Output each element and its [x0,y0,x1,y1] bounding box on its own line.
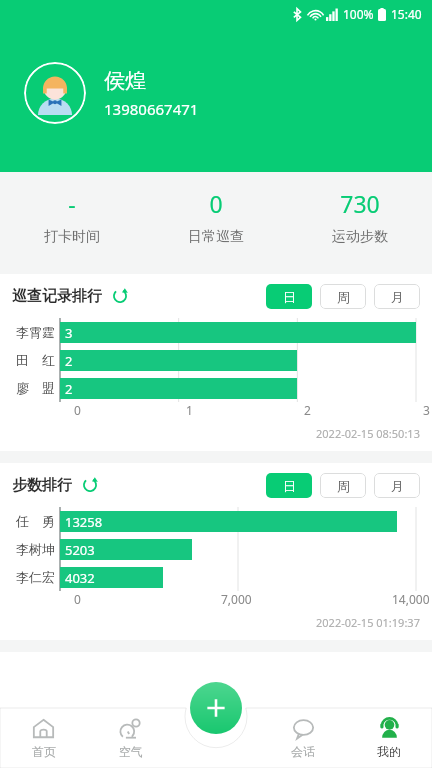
staticText: 0 [209,188,223,219]
button[interactable]: 日 [266,284,312,309]
staticText: 2 [304,402,311,418]
button[interactable]: 首页 [0,708,87,768]
staticText: 空气 [119,744,143,759]
button[interactable]: 我的 [346,708,432,768]
staticText: 3 [423,402,430,418]
staticText: 周 [337,478,350,494]
staticText: 李仁宏 [16,569,55,585]
staticText: 巡查记录排行 [12,287,102,306]
button[interactable]: Add [190,682,242,734]
staticText: 月 [391,478,404,494]
staticText: 步数排行 [12,476,72,495]
staticText: 运动步数 [332,228,388,246]
staticText: 李树坤 [16,541,55,557]
staticText: 日常巡查 [188,228,244,246]
button[interactable]: 月 [374,473,420,498]
staticText: 2 [65,380,73,398]
staticText: 100% [343,6,374,22]
staticText: 4032 [65,569,95,587]
staticText: 3 [65,324,73,342]
staticText: 侯煌 [104,68,146,94]
staticText: 周 [337,289,350,305]
button[interactable]: 730 [288,172,432,262]
staticText: 15:40 [391,6,422,22]
staticText: 730 [340,188,380,219]
button[interactable]: 空气 [87,708,174,768]
button[interactable]: 周 [320,473,366,498]
staticText: 日 [283,478,296,494]
button[interactable]: Refresh [80,475,100,495]
staticText: 日 [283,289,296,305]
button[interactable]: 0 [144,172,288,262]
button[interactable]: - [0,172,144,262]
staticText: 会话 [291,744,315,759]
button[interactable]: 会话 [260,708,346,768]
staticText: 打卡时间 [44,228,100,246]
staticText: 2 [65,352,73,370]
staticText: - [68,188,76,219]
staticText: 李霄霆 [16,324,55,340]
button[interactable]: Refresh [110,286,130,306]
staticText: 14,000 [392,591,430,607]
staticText: 13258 [65,513,103,531]
button[interactable]: 周 [320,284,366,309]
staticText: 田 红 [16,351,55,369]
staticText: 5203 [65,541,95,559]
button[interactable]: 日 [266,473,312,498]
staticText: 首页 [32,744,56,759]
staticText: 我的 [377,744,401,759]
button[interactable]: 月 [374,284,420,309]
staticText: 2022-02-15 01:19:37 [316,615,420,630]
staticText: 廖 盟 [16,379,55,397]
staticText: 13980667471 [104,99,199,119]
staticText: 1 [186,402,193,418]
staticText: 7,000 [221,591,252,607]
staticText: 任 勇 [16,512,55,530]
button[interactable]: Avatar [24,62,86,124]
staticText: 2022-02-15 08:50:13 [316,426,420,441]
staticText: 月 [391,289,404,305]
